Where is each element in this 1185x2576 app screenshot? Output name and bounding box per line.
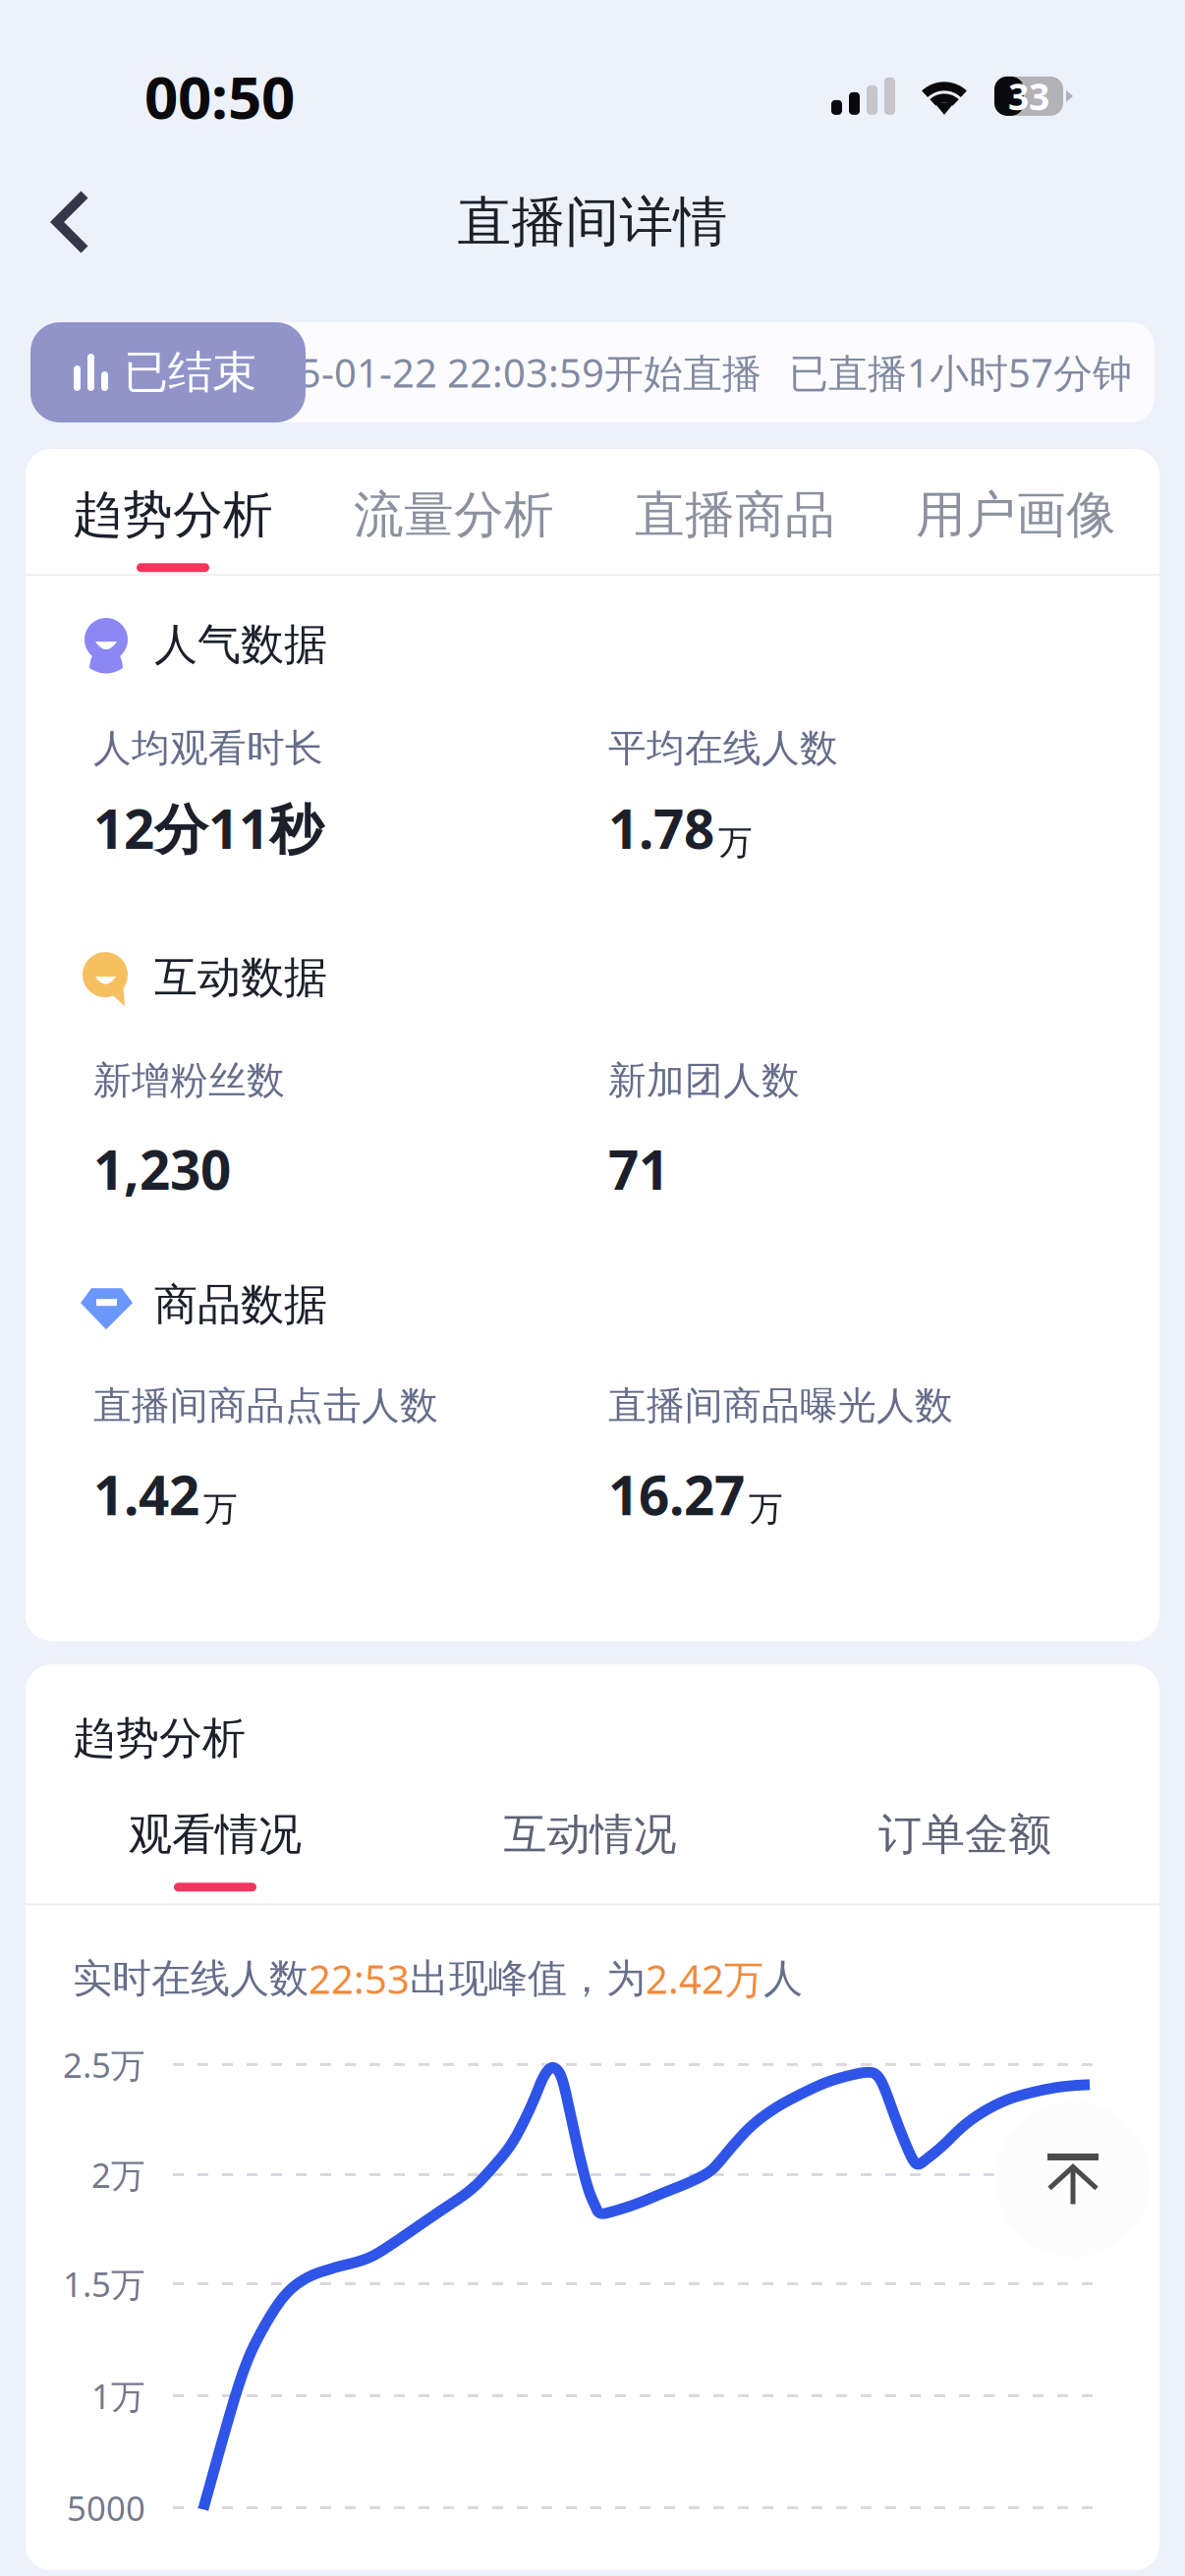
staticText: 人均观看时长	[93, 725, 323, 772]
staticText: 万	[749, 1488, 783, 1530]
staticText: 直播间商品曝光人数	[608, 1383, 953, 1429]
button[interactable]: 回到顶部	[995, 2102, 1151, 2257]
staticText: 33	[1008, 72, 1049, 120]
staticText: 1.5万	[63, 2261, 145, 2306]
button[interactable]: 直播商品	[635, 449, 835, 574]
staticText: 2.42万	[646, 1953, 763, 2005]
staticText: 5000	[67, 2485, 145, 2530]
staticText: 已直播1小时57分钟	[789, 346, 1132, 398]
staticText: 互动数据	[154, 951, 327, 1004]
staticText: 平均在线人数	[608, 725, 838, 772]
staticText: 趋势分析	[73, 484, 273, 545]
staticText: 71	[608, 1133, 669, 1205]
staticText: 人	[763, 1954, 803, 2003]
staticText: 1万	[91, 2373, 145, 2418]
staticText: 直播间详情	[457, 189, 728, 255]
button[interactable]: 返回	[41, 173, 140, 271]
button[interactable]: 趋势分析	[73, 449, 273, 574]
staticText: 2万	[91, 2152, 145, 2197]
staticText: 22:53	[309, 1953, 410, 2005]
staticText: 1,230	[93, 1133, 231, 1205]
button[interactable]: 互动情况	[504, 1808, 677, 1903]
staticText: 观看情况	[129, 1808, 302, 1861]
staticText: 新增粉丝数	[93, 1057, 285, 1104]
staticText: 2.5万	[63, 2042, 145, 2087]
staticText: 直播间商品点击人数	[93, 1383, 438, 1429]
staticText: 互动情况	[504, 1808, 677, 1861]
button[interactable]: 订单金额	[878, 1808, 1051, 1903]
staticText: 趋势分析	[73, 1712, 246, 1765]
button[interactable]: 流量分析	[354, 449, 554, 574]
staticText: 12分11秒	[93, 792, 323, 864]
staticText: 16.27	[608, 1459, 745, 1530]
staticText: 人气数据	[154, 618, 327, 671]
staticText: 用户画像	[916, 484, 1116, 545]
staticText: 订单金额	[878, 1808, 1051, 1861]
staticText: 商品数据	[154, 1278, 327, 1331]
staticText: 已结束	[124, 345, 256, 400]
staticText: 直播商品	[635, 484, 835, 545]
staticText: 00:50	[144, 57, 295, 135]
staticText: 新加团人数	[608, 1057, 800, 1104]
staticText: 1.78	[608, 792, 714, 864]
staticText: 5-01-22 22:03:59开始直播	[299, 346, 762, 398]
staticText: 出现峰值，为	[410, 1954, 646, 2003]
staticText: 实时在线人数	[73, 1954, 309, 2003]
staticText: 流量分析	[354, 484, 554, 545]
staticText: 1.42	[93, 1459, 199, 1530]
button[interactable]: 观看情况	[129, 1808, 302, 1903]
staticText: 万	[203, 1488, 238, 1530]
button[interactable]: 用户画像	[916, 449, 1116, 574]
staticText: 万	[718, 822, 753, 864]
